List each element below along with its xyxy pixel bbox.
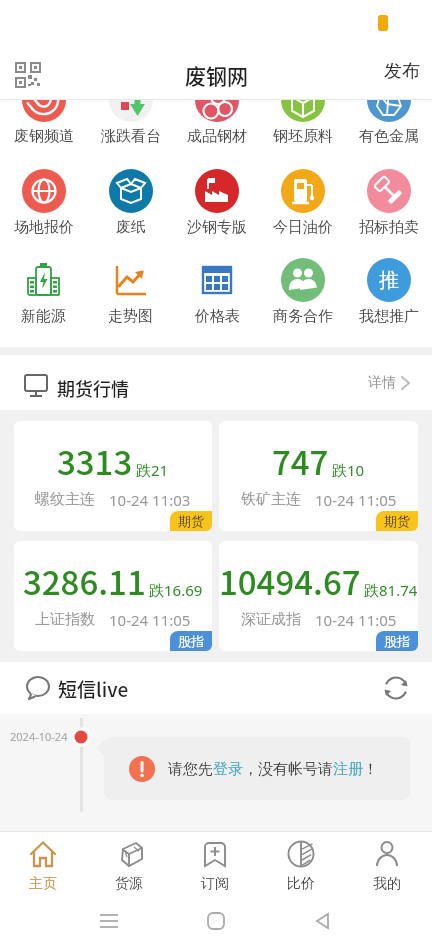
staticText: 招标拍卖 <box>359 218 419 237</box>
button[interactable]: 价格表 <box>174 258 260 326</box>
staticText: 价格表 <box>195 307 240 326</box>
button[interactable]: 我的 <box>344 831 430 905</box>
staticText: 3313 <box>57 437 133 485</box>
button[interactable] <box>15 62 41 88</box>
staticText: 股指 <box>384 633 410 649</box>
staticText: 推 <box>379 268 399 293</box>
button[interactable]: 推 <box>346 258 432 326</box>
staticText: 747 <box>272 437 329 485</box>
button[interactable]: 订阅 <box>172 831 258 905</box>
staticText: 上证指数 <box>35 610 95 629</box>
staticText: 主页 <box>29 875 57 893</box>
button[interactable]: 招标拍卖 <box>346 169 432 237</box>
button[interactable]: 废纸 <box>87 169 174 237</box>
button[interactable]: 今日油价 <box>260 169 346 237</box>
button[interactable] <box>384 676 408 700</box>
button[interactable]: 涨跌看台 <box>87 100 174 146</box>
staticText: 场地报价 <box>14 218 74 237</box>
staticText: 10-24 11:05 <box>109 610 191 630</box>
staticText: 3286.11 <box>23 557 146 605</box>
staticText: 10-24 11:03 <box>109 490 191 510</box>
staticText: 10494.67 <box>219 557 361 605</box>
staticText: 2024-10-24 <box>10 729 68 744</box>
button[interactable]: 详情 <box>368 374 412 392</box>
staticText: 股指 <box>178 633 204 649</box>
button[interactable]: 747 <box>219 421 418 531</box>
staticText: 新能源 <box>21 307 66 326</box>
staticText: 期货行情 <box>57 375 129 401</box>
staticText: 短信live <box>58 675 129 703</box>
button[interactable]: 发布 <box>380 56 424 87</box>
button[interactable]: 成品钢材 <box>174 100 260 146</box>
staticText: 期货 <box>384 513 410 529</box>
staticText: 螺纹主连 <box>35 490 95 509</box>
staticText: 走势图 <box>108 307 153 326</box>
staticText: 跌10 <box>332 460 365 480</box>
button[interactable]: 场地报价 <box>0 169 87 237</box>
staticText: 订阅 <box>201 875 229 893</box>
staticText: 废钢频道 <box>14 127 74 146</box>
button[interactable]: 3313 <box>14 421 212 531</box>
staticText: 货源 <box>115 875 143 893</box>
button[interactable] <box>206 911 226 931</box>
button[interactable]: 主页 <box>0 831 86 905</box>
button[interactable]: 走势图 <box>87 258 174 326</box>
staticText: 请您先登录，没有帐号请注册！ <box>168 760 378 779</box>
staticText: 比价 <box>287 875 315 893</box>
button[interactable]: 新能源 <box>0 258 87 326</box>
staticText: 跌21 <box>136 460 169 480</box>
button[interactable]: 货源 <box>86 831 172 905</box>
staticText: 10-24 11:05 <box>315 490 397 510</box>
staticText: 深证成指 <box>241 610 301 629</box>
staticText: 沙钢专版 <box>187 218 247 237</box>
staticText: 跌81.74 <box>364 580 418 600</box>
button[interactable]: 3286.11 <box>14 541 212 651</box>
staticText: 10-24 11:05 <box>315 610 397 630</box>
button[interactable]: 商务合作 <box>260 258 346 326</box>
button[interactable]: 比价 <box>258 831 344 905</box>
staticText: 我的 <box>373 875 401 893</box>
button[interactable]: 有色金属 <box>346 100 432 146</box>
staticText: 成品钢材 <box>187 127 247 146</box>
staticText: 钢坯原料 <box>273 127 333 146</box>
staticText: 有色金属 <box>359 127 419 146</box>
button[interactable]: 废钢频道 <box>0 100 87 146</box>
staticText: 铁矿主连 <box>241 490 301 509</box>
button[interactable] <box>99 911 119 931</box>
button[interactable]: 沙钢专版 <box>174 169 260 237</box>
staticText: 跌16.69 <box>149 580 203 600</box>
button[interactable] <box>313 911 333 931</box>
staticText: 废纸 <box>116 218 146 237</box>
staticText: 商务合作 <box>273 307 333 326</box>
staticText: 我想推广 <box>359 307 419 326</box>
staticText: 发布 <box>384 60 420 83</box>
staticText: 今日油价 <box>273 218 333 237</box>
button[interactable]: 10494.67 <box>219 541 418 651</box>
button[interactable]: 钢坯原料 <box>260 100 346 146</box>
staticText: 涨跌看台 <box>101 127 161 146</box>
staticText: 期货 <box>178 513 204 529</box>
staticText: 详情 <box>368 374 396 392</box>
button[interactable]: 请您先登录，没有帐号请注册！ <box>104 737 410 800</box>
staticText: 废钢网 <box>185 60 248 90</box>
